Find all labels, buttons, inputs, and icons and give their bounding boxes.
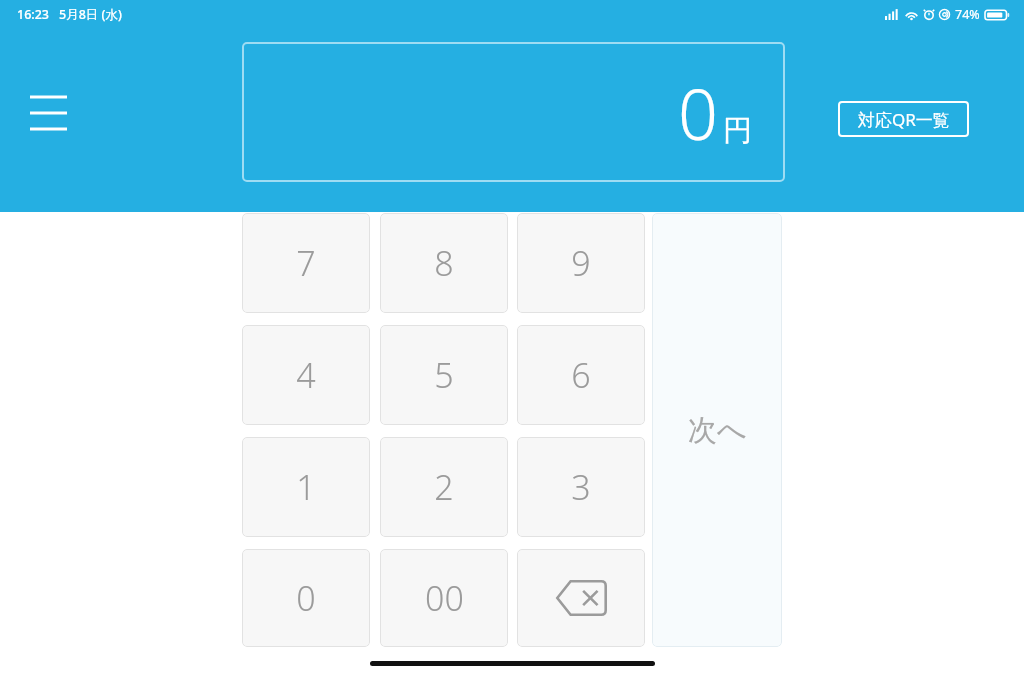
staticText: 3 [571,464,591,510]
button[interactable]: Menu [22,88,74,138]
staticText: 16:23 [17,6,50,23]
staticText: 7 [296,240,316,286]
staticText: 5月8日 (水) [59,6,122,23]
staticText: 2 [434,464,454,510]
button[interactable]: 0 [242,42,785,182]
staticText: 4 [296,352,316,398]
staticText: 8 [434,240,454,286]
button[interactable]: Backspace [517,549,645,647]
button[interactable]: 3 [517,437,645,537]
button[interactable]: 次へ [652,213,782,647]
staticText: 6 [571,352,591,398]
staticText: 0 [678,65,718,160]
staticText: 9 [571,240,591,286]
button[interactable]: 8 [380,213,508,313]
button[interactable]: 2 [380,437,508,537]
staticText: 74% [955,6,980,23]
staticText: 00 [425,575,464,621]
button[interactable]: 0 [242,549,370,647]
button[interactable]: 9 [517,213,645,313]
staticText: 円 [723,112,752,149]
button[interactable]: 1 [242,437,370,537]
staticText: 1 [296,464,316,510]
staticText: 次へ [688,412,747,449]
staticText: 5 [434,352,454,398]
button[interactable]: 5 [380,325,508,425]
button[interactable]: 00 [380,549,508,647]
button[interactable]: 4 [242,325,370,425]
button[interactable]: 対応QR一覧 [838,101,969,137]
button[interactable]: 6 [517,325,645,425]
button[interactable]: 7 [242,213,370,313]
staticText: 対応QR一覧 [858,108,950,131]
staticText: 0 [296,575,316,621]
